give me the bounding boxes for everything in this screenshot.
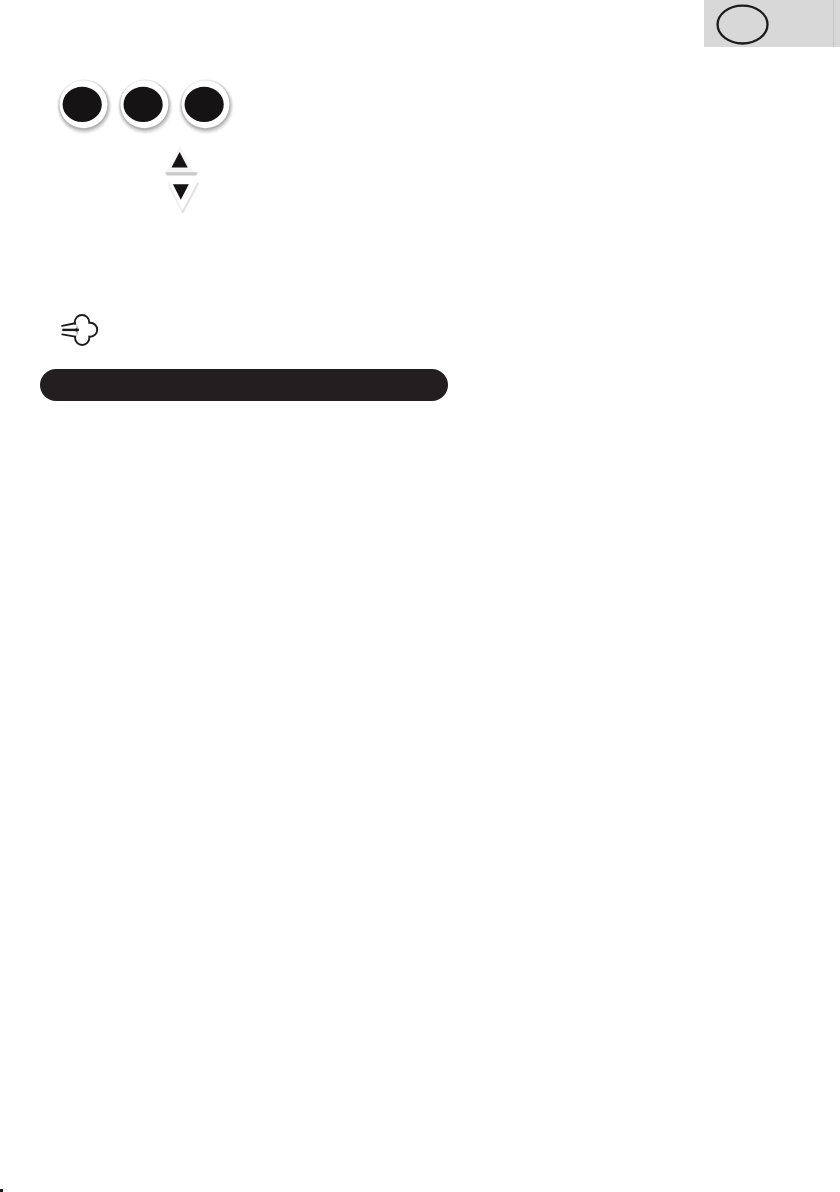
button[interactable]: Air — [58, 310, 102, 350]
button[interactable]: Stepper up and down — [163, 148, 205, 208]
button[interactable]: Progress bar — [40, 369, 448, 401]
button[interactable]: Ellipse shape — [704, 0, 840, 47]
button[interactable]: Colour dots — [52, 74, 220, 138]
